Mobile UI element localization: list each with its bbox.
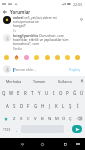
- button[interactable]: Ö: [60, 112, 67, 125]
- button[interactable]: Ğ: [71, 86, 78, 99]
- staticText: B: [41, 116, 44, 122]
- button[interactable]: K: [53, 99, 60, 112]
- staticText: V: [34, 116, 37, 122]
- button[interactable]: Voice input: [78, 76, 85, 86]
- staticText: A: [6, 103, 9, 109]
- staticText: W: [9, 90, 14, 96]
- staticText: R: [24, 90, 27, 96]
- button[interactable]: Hide keyboard: [73, 139, 83, 149]
- button[interactable]: Merhaba: [1, 76, 26, 86]
- staticText: ,: [16, 127, 18, 132]
- staticText: İ: [77, 103, 79, 109]
- button[interactable]: Back: [17, 139, 27, 149]
- button[interactable]: Emoji: [22, 53, 30, 61]
- staticText: Ğ: [73, 90, 77, 96]
- staticText: Ü: [80, 90, 84, 96]
- button[interactable]: Tamam: [26, 76, 52, 86]
- button[interactable]: ?123: [0, 125, 13, 133]
- button[interactable]: Send: [72, 125, 82, 133]
- button[interactable]: nabeel ve5_yet,bizi,sizlere mi sunuyorsu…: [0, 15, 85, 33]
- staticText: T: [31, 90, 34, 96]
- button[interactable]: I: [50, 86, 57, 99]
- button[interactable]: Ş: [67, 99, 74, 112]
- button[interactable]: Q: [0, 86, 8, 99]
- staticText: Ş: [69, 103, 72, 109]
- staticText: I: [53, 90, 55, 96]
- staticText: L: [62, 103, 65, 109]
- staticText: 1s: [13, 29, 16, 33]
- button[interactable]: .: [64, 125, 72, 133]
- staticText: K: [55, 103, 58, 109]
- staticText: Yanitla: [13, 47, 22, 51]
- button[interactable]: E: [15, 86, 22, 99]
- button[interactable]: O: [57, 86, 64, 99]
- staticText: Ç: [69, 116, 72, 122]
- staticText: E: [17, 90, 20, 96]
- button[interactable]: H: [39, 99, 46, 112]
- button[interactable]: İ: [74, 99, 81, 112]
- staticText: Merhaba: [6, 79, 22, 84]
- button[interactable]: Emoji: [43, 53, 51, 61]
- button[interactable]: Emoji: [2, 53, 10, 61]
- button[interactable]: F: [25, 99, 32, 112]
- button[interactable]: Paylaş: [68, 66, 82, 73]
- staticText: O: [59, 90, 63, 96]
- staticText: P: [66, 90, 69, 96]
- button[interactable]: ,: [13, 125, 21, 133]
- button[interactable]: L: [60, 99, 67, 112]
- button[interactable]: P: [64, 86, 71, 99]
- staticText: Tamam: [33, 79, 46, 84]
- button[interactable]: Backspace: [74, 112, 85, 125]
- button[interactable]: N: [46, 112, 53, 125]
- staticText: U: [45, 90, 49, 96]
- button[interactable]: Back: [0, 8, 10, 15]
- staticText: .: [67, 127, 69, 132]
- button[interactable]: M: [53, 112, 60, 125]
- button[interactable]: Emoji: [73, 53, 81, 61]
- button[interactable]: Emoji: [12, 53, 20, 61]
- staticText: C: [27, 116, 30, 122]
- button[interactable]: C: [25, 112, 32, 125]
- button[interactable]: A: [4, 99, 11, 112]
- staticText: N: [48, 116, 52, 122]
- button[interactable]: J: [46, 99, 53, 112]
- button[interactable]: bciegjfgwrnbhtc Donushost .com hazirlikl…: [0, 33, 85, 51]
- staticText: Y: [38, 90, 41, 96]
- button[interactable]: Like: [78, 16, 84, 22]
- button[interactable]: Z: [11, 112, 18, 125]
- staticText: J: [49, 103, 51, 109]
- button[interactable]: Kullanıcı: [52, 76, 78, 86]
- button[interactable]: Recents: [60, 139, 70, 149]
- button[interactable]: X: [18, 112, 25, 125]
- staticText: ?123: [3, 127, 11, 131]
- staticText: F: [27, 103, 30, 109]
- button[interactable]: V: [32, 112, 39, 125]
- staticText: Q: [2, 90, 6, 96]
- staticText: Yorum ekle...: [14, 67, 36, 72]
- button[interactable]: Home: [37, 139, 47, 149]
- button[interactable]: B: [39, 112, 46, 125]
- staticText: G: [34, 103, 38, 109]
- button[interactable]: Emoji: [53, 53, 61, 61]
- staticText: M: [55, 116, 59, 122]
- staticText: D: [20, 103, 24, 109]
- button[interactable]: D: [18, 99, 25, 112]
- button[interactable]: W: [8, 86, 15, 99]
- staticText: Yorumlar: [10, 9, 31, 15]
- button[interactable]: T: [29, 86, 36, 99]
- button[interactable]: Shift: [0, 112, 11, 125]
- button[interactable]: G: [32, 99, 39, 112]
- button[interactable]: S: [11, 99, 18, 112]
- button[interactable]: Ü: [78, 86, 85, 99]
- button[interactable]: Emoji: [63, 53, 71, 61]
- staticText: X: [20, 116, 23, 122]
- button[interactable]: R: [22, 86, 29, 99]
- staticText: Kullanıcı: [58, 79, 73, 84]
- button[interactable]: Ç: [67, 112, 74, 125]
- button[interactable]: Y: [36, 86, 43, 99]
- button[interactable]: U: [43, 86, 50, 99]
- staticText: Ö: [62, 116, 66, 122]
- button[interactable]: Emoji: [32, 53, 40, 61]
- staticText: Z: [13, 116, 16, 122]
